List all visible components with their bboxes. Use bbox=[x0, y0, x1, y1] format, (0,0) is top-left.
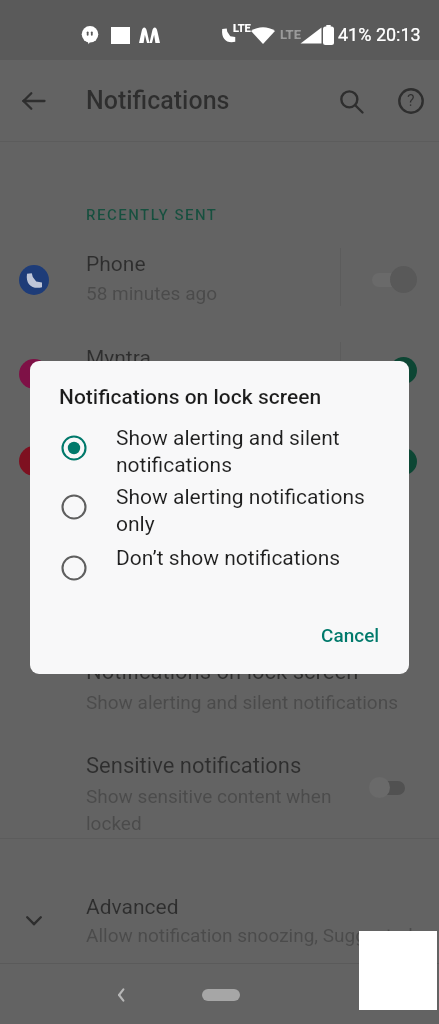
staticText: Notifications bbox=[86, 86, 230, 115]
staticText: Don’t show notifications bbox=[116, 546, 341, 571]
button[interactable]: Phone bbox=[0, 252, 439, 344]
button[interactable]: Back bbox=[14, 81, 54, 121]
button[interactable]: Cancel bbox=[308, 615, 393, 655]
staticText: Allow notification snoozing, Suggested bbox=[86, 924, 413, 946]
button[interactable]: Advanced bbox=[0, 880, 439, 960]
staticText: Notifications on lock screen bbox=[86, 659, 359, 685]
staticText: Notifications on lock screen bbox=[59, 385, 322, 410]
staticText: Show alerting notifications only bbox=[116, 485, 365, 537]
staticText: Show alerting and silent notifications bbox=[86, 691, 398, 713]
staticText: Myntra bbox=[86, 346, 151, 371]
staticText: 58 minutes ago bbox=[86, 282, 217, 304]
button[interactable] bbox=[30, 480, 409, 534]
button[interactable] bbox=[30, 541, 409, 595]
staticText: RECENTLY SENT bbox=[86, 206, 218, 224]
button[interactable]: Help bbox=[391, 81, 431, 121]
button[interactable] bbox=[30, 421, 409, 475]
staticText: Cancel bbox=[321, 624, 380, 646]
staticText: Sensitive notifications bbox=[86, 753, 302, 779]
staticText: ? bbox=[407, 91, 415, 110]
staticText: Advanced bbox=[86, 895, 179, 920]
staticText: LTE bbox=[280, 27, 301, 42]
button[interactable]: Search bbox=[331, 81, 371, 121]
staticText: Show sensitive content when locked bbox=[86, 785, 332, 835]
button[interactable]: Back bbox=[101, 975, 141, 1015]
staticText: Show alerting and silent notifications bbox=[116, 426, 340, 478]
staticText: 41% 20:13 bbox=[338, 24, 421, 45]
staticText: Phone bbox=[86, 252, 146, 277]
staticText: LTE bbox=[233, 22, 251, 35]
button[interactable]: Notifications on lock screen bbox=[0, 659, 439, 753]
button[interactable]: Home bbox=[202, 989, 240, 1001]
button[interactable]: Myntra bbox=[0, 346, 439, 438]
button[interactable]: Sensitive notifications bbox=[0, 753, 439, 847]
